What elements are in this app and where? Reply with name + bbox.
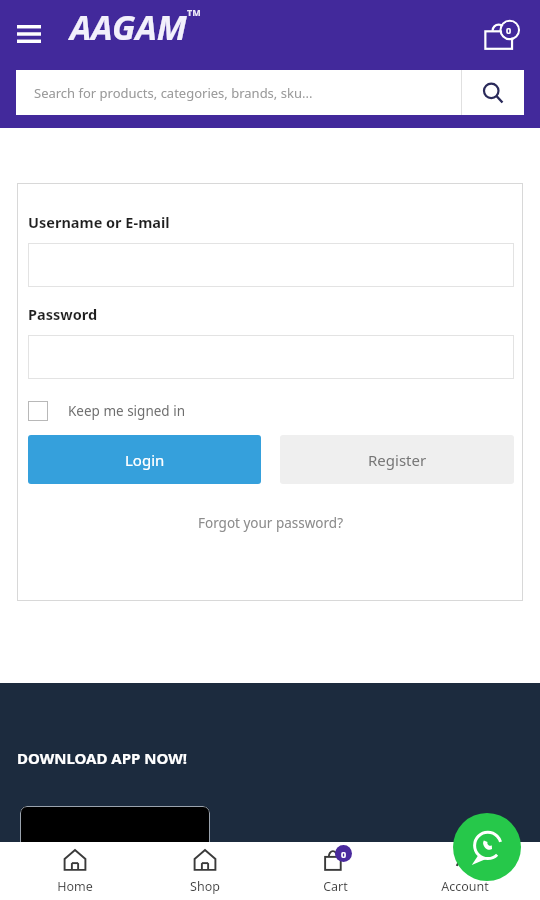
staticText: Forgot your password? [198,514,344,532]
button[interactable]: AAGAM [70,4,201,50]
button[interactable]: Login [28,435,261,484]
button[interactable]: Password field [28,335,514,379]
button[interactable]: Menu [12,17,46,51]
staticText: Home [57,878,93,895]
staticText: Keep me signed in [68,402,185,420]
button[interactable]: Account [410,842,520,900]
button[interactable]: Register [280,435,514,484]
button[interactable]: Shop [150,842,260,900]
staticText: Shop [190,878,220,895]
button[interactable]: Cart [478,12,524,58]
staticText: Username or E-mail [28,212,170,232]
button[interactable]: Get it on Google Play [20,806,210,866]
button[interactable]: Keep me signed in [28,401,185,421]
button[interactable]: Chat on WhatsApp [453,813,521,881]
button[interactable]: Forgot your password? [192,508,350,538]
button[interactable]: 0 [280,842,390,900]
button[interactable]: Search for products, categories, brands,… [16,70,524,115]
staticText: DOWNLOAD APP NOW! [17,748,187,768]
staticText: TM [187,6,201,18]
staticText: Cart [323,878,348,895]
staticText: Login [125,450,165,470]
button[interactable]: Username or E-mail field [28,243,514,287]
staticText: 0 [506,24,512,36]
staticText: AAGAM [70,4,187,50]
button[interactable]: Home [20,842,130,900]
staticText: Password [28,304,98,324]
staticText: Search for products, categories, brands,… [34,84,461,102]
button[interactable]: Search [462,70,524,115]
staticText: Account [441,878,489,895]
staticText: Register [368,450,427,470]
staticText: 0 [341,848,347,860]
